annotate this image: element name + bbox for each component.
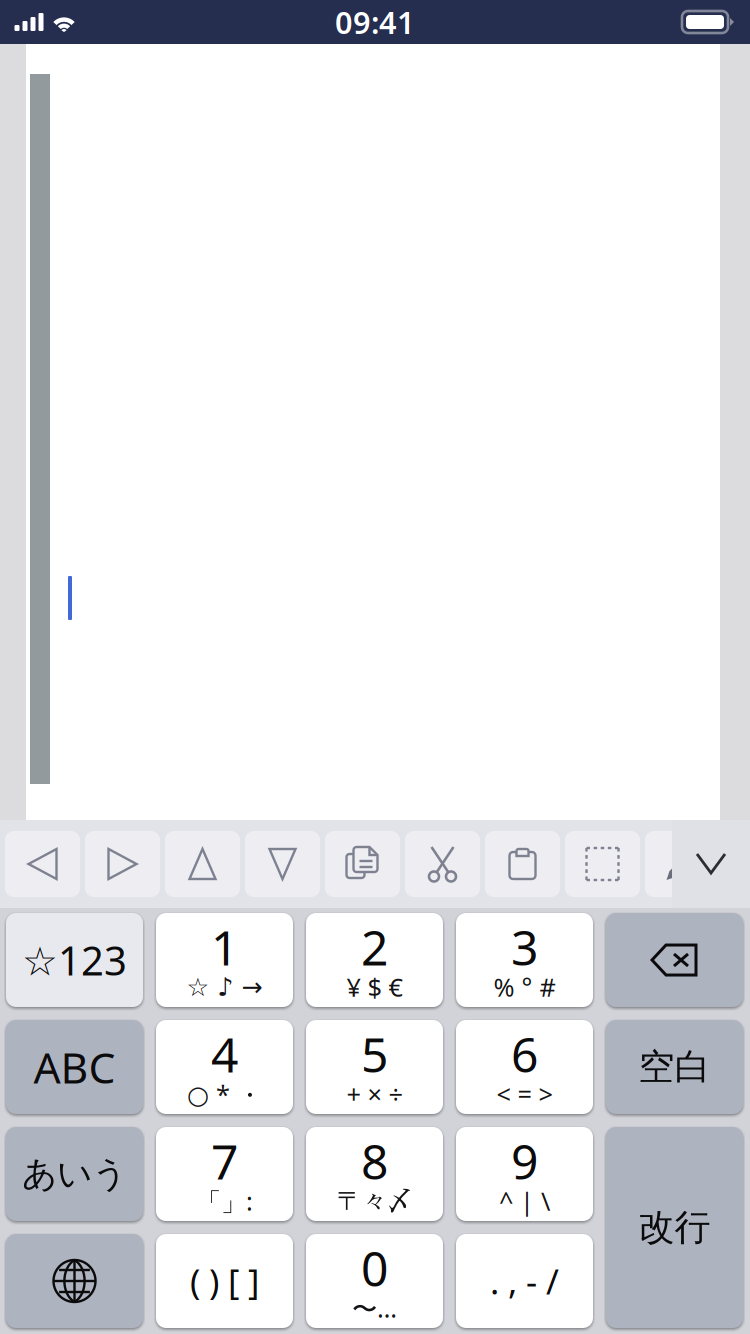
button[interactable]: Move down [245,831,320,897]
button[interactable]: . , - / [456,1234,593,1328]
staticText: ^ | \ [499,1184,550,1218]
staticText: ☆ ♪ → [186,973,262,1001]
staticText: < = > [496,1077,552,1111]
button[interactable]: 5 [306,1020,443,1114]
staticText: 1 [211,915,238,979]
staticText: 3 [511,915,538,979]
staticText: あいう [22,1153,127,1195]
button[interactable]: Markup [645,831,720,897]
button[interactable]: 空白 [606,1020,743,1114]
staticText: ( ) [ ] [190,1258,259,1304]
button[interactable]: 8 [306,1127,443,1221]
button[interactable]: あいう [6,1127,143,1221]
staticText: ABC [33,1039,115,1095]
staticText: % ° # [493,970,555,1004]
button[interactable]: 1 [156,913,293,1007]
button[interactable]: 4 [156,1020,293,1114]
staticText: 「」: [196,1184,253,1218]
button[interactable]: ABC [6,1020,143,1114]
staticText: 6 [511,1022,538,1086]
button[interactable]: Cut [405,831,480,897]
button[interactable]: 6 [456,1020,593,1114]
staticText: + × ÷ [346,1077,402,1111]
staticText: 〜… [352,1291,397,1325]
staticText: 〒々〆 [337,1185,412,1216]
button[interactable]: 改行 [606,1127,743,1328]
staticText: . , - / [490,1258,559,1304]
button[interactable]: 7 [156,1127,293,1221]
staticText: 空白 [638,1045,710,1089]
button[interactable]: Move up [165,831,240,897]
button[interactable]: 0 [306,1234,443,1328]
button[interactable]: Hide keyboard [672,820,750,908]
button[interactable]: ☆123 [6,913,143,1007]
button[interactable]: Paste [485,831,560,897]
staticText: ☆123 [22,933,127,986]
staticText: 9 [511,1129,538,1193]
staticText: 2 [361,915,388,979]
staticText: 8 [361,1129,388,1193]
button[interactable]: 9 [456,1127,593,1221]
staticText: ○ * ・ [187,1077,262,1111]
button[interactable]: Move left [5,831,80,897]
button[interactable]: Delete [606,913,743,1007]
staticText: 0 [361,1236,388,1300]
staticText: ¥ $ € [346,970,402,1004]
staticText: 09:41 [335,2,415,42]
button[interactable]: Copy [325,831,400,897]
staticText: 5 [361,1022,388,1086]
button[interactable]: 2 [306,913,443,1007]
staticText: 7 [211,1129,238,1193]
button[interactable]: Move right [85,831,160,897]
staticText: 改行 [638,1205,710,1250]
staticText: 4 [211,1022,238,1086]
button[interactable]: 3 [456,913,593,1007]
button[interactable]: Select [565,831,640,897]
button[interactable]: ( ) [ ] [156,1234,293,1328]
button[interactable]: Next keyboard [6,1234,143,1328]
